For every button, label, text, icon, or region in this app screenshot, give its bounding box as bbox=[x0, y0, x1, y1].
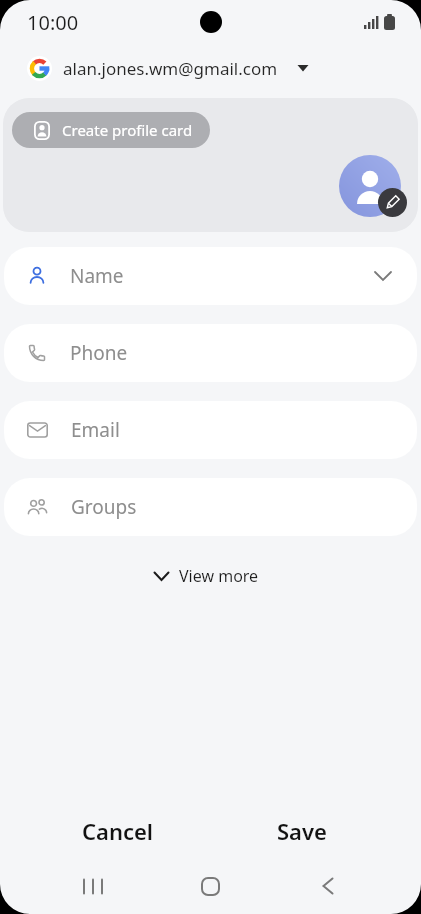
button[interactable]: Groups bbox=[4, 478, 417, 536]
button[interactable] bbox=[73, 866, 113, 906]
staticText: Create profile card bbox=[62, 120, 193, 140]
staticText: alan.jones.wm@gmail.com bbox=[63, 57, 278, 80]
staticText: 10:00 bbox=[27, 9, 79, 36]
button[interactable] bbox=[308, 866, 348, 906]
button[interactable]: Cancel bbox=[0, 806, 210, 856]
button[interactable]: Create profile card bbox=[12, 112, 210, 148]
button[interactable]: View more bbox=[147, 561, 265, 591]
staticText: Name bbox=[70, 263, 124, 289]
button[interactable] bbox=[190, 866, 230, 906]
staticText: Phone bbox=[70, 340, 128, 366]
staticText: Cancel bbox=[82, 816, 154, 846]
button[interactable]: Save bbox=[210, 806, 421, 856]
button[interactable]: Phone bbox=[4, 324, 417, 382]
staticText: Save bbox=[277, 816, 327, 846]
staticText: Email bbox=[71, 417, 120, 443]
staticText: View more bbox=[179, 565, 259, 587]
button[interactable]: Email bbox=[4, 401, 417, 459]
button[interactable]: Name bbox=[4, 247, 417, 305]
button[interactable]: alan.jones.wm@gmail.com bbox=[0, 54, 309, 82]
staticText: Groups bbox=[71, 494, 137, 520]
button[interactable] bbox=[339, 155, 401, 217]
button[interactable] bbox=[378, 188, 407, 217]
